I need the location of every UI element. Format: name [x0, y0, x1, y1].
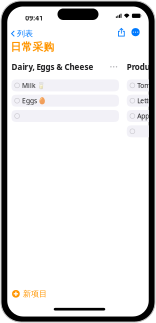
- staticText: 🥛: [37, 82, 45, 89]
- button[interactable]: Tomatoes: [127, 79, 156, 91]
- staticText: Milk: [22, 81, 36, 90]
- staticText: 日常采购: [10, 40, 54, 53]
- button[interactable]: Share: [116, 27, 127, 38]
- button[interactable]: 新项目: [8, 286, 51, 302]
- button[interactable]: Apples: [127, 110, 156, 122]
- staticText: 09:41: [25, 13, 43, 22]
- button[interactable]: 列表: [8, 27, 35, 40]
- staticText: 新项目: [23, 289, 47, 299]
- button[interactable]: Milk: [11, 79, 119, 91]
- staticText: 🥚: [38, 97, 46, 104]
- staticText: Dairy, Eggs & Cheese: [11, 61, 93, 72]
- staticText: Lettuce: [137, 96, 156, 105]
- button[interactable]: More options: [130, 26, 141, 38]
- button[interactable]: Lettuce: [127, 95, 156, 107]
- staticText: Eggs: [22, 96, 37, 105]
- button[interactable]: Section options: [108, 64, 119, 69]
- staticText: 列表: [17, 29, 33, 38]
- staticText: Apples: [137, 112, 156, 120]
- button[interactable]: Eggs: [11, 95, 119, 107]
- button[interactable]: [127, 125, 156, 137]
- staticText: Tomatoes: [137, 81, 156, 90]
- staticText: Produce: [127, 61, 156, 72]
